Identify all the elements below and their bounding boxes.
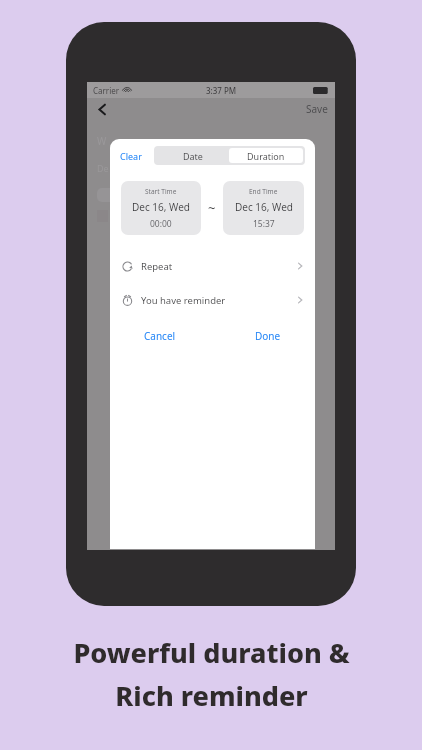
staticText: Date [183,150,203,162]
button[interactable]: End Time [223,181,304,235]
button[interactable]: Done [255,329,281,343]
button[interactable]: You have reminder [110,283,315,317]
staticText: 00:00 [150,218,172,230]
staticText: W [97,134,107,148]
staticText: De [97,162,109,174]
staticText: End Time [249,187,278,196]
staticText: You have reminder [141,294,226,307]
button[interactable]: Start Time [121,181,201,235]
button[interactable]: Duration [229,148,303,163]
staticText: Repeat [141,260,173,273]
staticText: Duration [247,150,285,162]
button[interactable]: Clear [120,150,142,162]
button[interactable]: Repeat [110,249,315,283]
button[interactable]: Cancel [144,329,176,343]
staticText: Powerful duration & [73,634,350,671]
button[interactable]: Back [94,101,110,117]
staticText: 15:37 [253,218,275,230]
button[interactable]: Date [156,148,229,163]
button[interactable]: Save [306,102,328,116]
staticText: Carrier [93,85,120,96]
staticText: Dec 16, Wed [132,200,190,214]
staticText: Dec 16, Wed [235,200,293,214]
staticText: ~ [208,199,216,217]
staticText: 3:37 PM [206,85,237,96]
staticText: Rich reminder [115,677,308,714]
staticText: Start Time [145,187,177,196]
